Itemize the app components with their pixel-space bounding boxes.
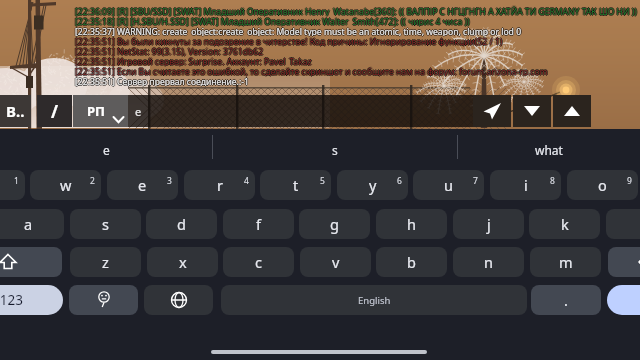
button[interactable]: j <box>453 209 524 239</box>
button[interactable]: o <box>567 170 638 200</box>
button[interactable]: a <box>0 209 64 239</box>
staticText: [22:36:09] [R] [SBU/SSD] [SWAT] Младший … <box>75 6 637 16</box>
staticText: t <box>293 175 299 195</box>
button[interactable]: w <box>30 170 101 200</box>
button[interactable]: v <box>300 247 371 277</box>
staticText: 4 <box>244 175 249 187</box>
button[interactable]: t <box>260 170 331 200</box>
staticText: [22:35:51] NetStat: 99(3.15), Version: 3… <box>74 46 263 56</box>
staticText: [22:35:51] Вы были кикнуты за подозрение… <box>75 35 503 45</box>
staticText: [22:35:37] WARNING: create_object:create… <box>76 26 523 36</box>
button[interactable]: Scroll chat up <box>553 95 591 127</box>
button[interactable]: Shift <box>0 247 62 277</box>
staticText: [22:35:51] Если Вы считаете это ошибкой,… <box>76 66 549 76</box>
staticText: m <box>559 252 573 272</box>
staticText: ?123 <box>0 291 24 309</box>
staticText: 8 <box>550 175 555 187</box>
staticText: e <box>138 175 147 195</box>
button[interactable]: e <box>107 170 178 200</box>
button[interactable]: Language <box>144 285 213 315</box>
staticText: a <box>24 214 33 234</box>
staticText: [22:35:51] Вы были кикнуты за подозрение… <box>74 36 502 46</box>
staticText: [22:35:51] NetStat: 99(3.15), Version: 3… <box>75 46 264 56</box>
staticText: k <box>561 214 569 234</box>
button[interactable]: n <box>453 247 524 277</box>
staticText: [22:35:37] WARNING: create_object:create… <box>75 26 522 36</box>
button[interactable]: i <box>490 170 561 200</box>
staticText: [22:36:09] [R] [SBU/SSD] [SWAT] Младший … <box>75 7 637 17</box>
staticText: [22:35:51] Игровой сервер: Surprise. Акк… <box>75 55 312 65</box>
button[interactable]: . <box>531 285 601 315</box>
button[interactable]: m <box>530 247 601 277</box>
staticText: [22:35:51] Игровой сервер: Surprise. Акк… <box>75 56 312 66</box>
button[interactable]: ?123 <box>0 285 63 315</box>
staticText: e <box>103 142 110 158</box>
staticText: [22:35:51] Вы были кикнуты за подозрение… <box>76 36 504 46</box>
staticText: [22:35:18] [R] [H.SBU/H.SSD] [SWAT] Млад… <box>75 17 470 27</box>
button[interactable]: u <box>413 170 484 200</box>
button[interactable]: z <box>70 247 141 277</box>
button[interactable]: h <box>376 209 447 239</box>
button[interactable]: f <box>223 209 294 239</box>
button[interactable]: Emoji <box>69 285 138 315</box>
staticText: x <box>179 252 187 272</box>
staticText: i <box>524 175 528 195</box>
staticText: [22:35:37] WARNING: create_object:create… <box>75 27 522 37</box>
staticText: 6 <box>397 175 402 187</box>
button[interactable]: s <box>212 129 457 170</box>
staticText: [22:35:51] Сервер прервал соединение.:-1 <box>75 76 249 86</box>
staticText: what <box>535 142 563 158</box>
staticText: 7 <box>473 175 478 187</box>
staticText: b <box>407 252 416 272</box>
staticText: [22:35:51] Если Вы считаете это ошибкой,… <box>75 67 548 77</box>
staticText: [22:35:51] Сервер прервал соединение.:-1 <box>75 77 249 87</box>
staticText: English <box>358 294 391 307</box>
button[interactable]: Backspace <box>608 247 640 277</box>
button[interactable]: k <box>529 209 600 239</box>
staticText: [22:35:51] Если Вы считаете это ошибкой,… <box>75 65 548 75</box>
button[interactable]: g <box>299 209 370 239</box>
staticText: [22:35:51] Сервер прервал соединение.:-1 <box>75 75 249 85</box>
button[interactable]: s <box>70 209 141 239</box>
button[interactable]: Send <box>473 95 511 127</box>
button[interactable]: Scroll chat down <box>513 95 551 127</box>
button[interactable]: r <box>184 170 255 200</box>
button[interactable]: b <box>376 247 447 277</box>
staticText: r <box>217 175 223 195</box>
button[interactable]: e <box>0 129 212 170</box>
staticText: [22:35:18] [R] [H.SBU/H.SSD] [SWAT] Млад… <box>75 16 470 26</box>
staticText: [22:35:51] Вы были кикнуты за подозрение… <box>75 36 503 46</box>
staticText: w <box>60 175 72 195</box>
button[interactable]: d <box>146 209 217 239</box>
staticText: [22:35:18] [R] [H.SBU/H.SSD] [SWAT] Млад… <box>76 16 471 26</box>
staticText: v <box>332 252 340 272</box>
staticText: z <box>102 252 109 272</box>
button[interactable]: РП <box>73 95 128 127</box>
staticText: 3 <box>167 175 172 187</box>
staticText: [22:35:51] NetStat: 99(3.15), Version: 3… <box>76 46 265 56</box>
button[interactable]: x <box>147 247 218 277</box>
staticText: РП <box>87 102 106 120</box>
staticText: h <box>407 214 416 234</box>
button[interactable]: e <box>128 95 473 127</box>
button[interactable]: English <box>221 285 527 315</box>
staticText: [22:35:51] Сервер прервал соединение.:-1 <box>74 76 248 86</box>
button[interactable]: В.. <box>0 95 31 127</box>
staticText: [22:35:51] NetStat: 99(3.15), Version: 3… <box>75 45 264 55</box>
staticText: / <box>51 100 59 123</box>
button[interactable]: y <box>337 170 408 200</box>
staticText: f <box>256 214 261 234</box>
button[interactable]: c <box>223 247 294 277</box>
button[interactable]: / <box>37 95 72 127</box>
staticText: [22:35:18] [R] [H.SBU/H.SSD] [SWAT] Млад… <box>74 16 469 26</box>
button[interactable]: l <box>606 209 640 239</box>
button[interactable]: Enter <box>607 285 640 315</box>
button[interactable]: what <box>457 129 640 170</box>
staticText: 9 <box>627 175 632 187</box>
staticText: g <box>330 214 339 234</box>
staticText: n <box>484 252 493 272</box>
staticText: [22:35:51] NetStat: 99(3.15), Version: 3… <box>75 47 264 57</box>
staticText: . <box>564 290 568 310</box>
staticText: e <box>135 104 142 119</box>
button[interactable]: q <box>0 170 25 200</box>
